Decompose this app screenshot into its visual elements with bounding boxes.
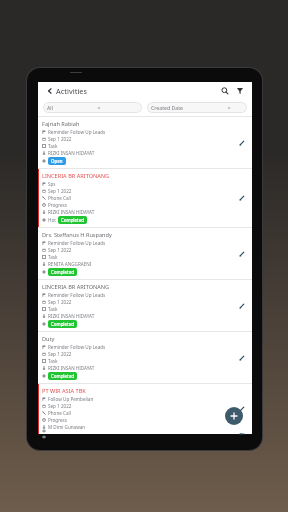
button[interactable]: Edit [232, 384, 252, 434]
staticText: Task [48, 254, 58, 260]
button[interactable]: Edit [232, 332, 252, 383]
staticText: Completed [51, 321, 74, 327]
button[interactable]: All [43, 102, 142, 113]
staticText: Completed [51, 373, 74, 379]
button[interactable]: Duty [38, 332, 252, 383]
staticText: Phone Call [48, 410, 71, 416]
staticText: Completed [51, 269, 74, 275]
staticText: M Dimi Gunawan [48, 424, 86, 430]
staticText: RIZKI INSAN HIDAYAT [48, 365, 95, 371]
staticText: Follow Up Pembelian [48, 396, 94, 402]
button[interactable]: LINCERIA BR ARITONANG [38, 280, 252, 331]
staticText: Completed [61, 217, 84, 223]
button[interactable]: Add activity [225, 407, 243, 425]
staticText: RIZKI INSAN HIDAYAT [48, 313, 95, 319]
staticText: Activities [56, 86, 87, 96]
staticText: Progress [48, 202, 67, 208]
button[interactable]: Search [218, 84, 231, 97]
staticText: Sep 1 2022 [48, 188, 72, 194]
staticText: Sps [48, 181, 56, 187]
staticText: Open [51, 158, 63, 164]
staticText: RIZKI INSAN HIDAYAT [48, 150, 95, 156]
staticText: Reminder Follow Up Leads [48, 129, 106, 135]
button[interactable]: Edit [232, 117, 252, 168]
staticText: Reminder Follow Up Leads [48, 292, 106, 298]
button[interactable]: Drs. Steffanus H Ruspandy [38, 228, 252, 279]
staticText: RENITA ANGGRAENI [48, 261, 92, 267]
button[interactable]: Edit [232, 280, 252, 331]
staticText: RIZKI INSAN HIDAYAT [48, 209, 95, 215]
staticText: Phone Call [48, 195, 71, 201]
staticText: LINCERIA BR ARITONANG [42, 283, 110, 291]
staticText: LINCERIA BR ARITONANG [42, 172, 110, 180]
button[interactable]: Back [44, 85, 55, 96]
staticText: Task [48, 143, 58, 149]
staticText: Sep 1 2022 [48, 136, 72, 142]
staticText: Hot [48, 217, 56, 223]
staticText: All [47, 104, 53, 111]
staticText: Task [48, 306, 58, 312]
staticText: Task [48, 358, 58, 364]
staticText: Created Date [151, 104, 183, 111]
button[interactable]: LINCERIA BR ARITONANG [38, 169, 252, 227]
button[interactable]: Created Date [147, 102, 247, 113]
staticText: Sep 1 2022 [48, 299, 72, 305]
staticText: Duty [42, 335, 55, 343]
staticText: Sep 1 2022 [48, 403, 72, 409]
staticText: Progress [48, 417, 67, 423]
staticText: Reminder Follow Up Leads [48, 344, 106, 350]
button[interactable]: PT WIR ASIA TBK [38, 384, 252, 434]
button[interactable]: Fajriah Rabiah [38, 117, 252, 168]
button[interactable]: Edit [232, 169, 252, 227]
staticText: Fajriah Rabiah [42, 120, 80, 128]
staticText: Sep 1 2022 [48, 247, 72, 253]
staticText: PT WIR ASIA TBK [42, 387, 86, 395]
button[interactable]: Edit [232, 228, 252, 279]
staticText: Reminder Follow Up Leads [48, 240, 106, 246]
staticText: Drs. Steffanus H Ruspandy [42, 231, 112, 239]
button[interactable]: Filter [233, 84, 246, 97]
staticText: Sep 1 2022 [48, 351, 72, 357]
